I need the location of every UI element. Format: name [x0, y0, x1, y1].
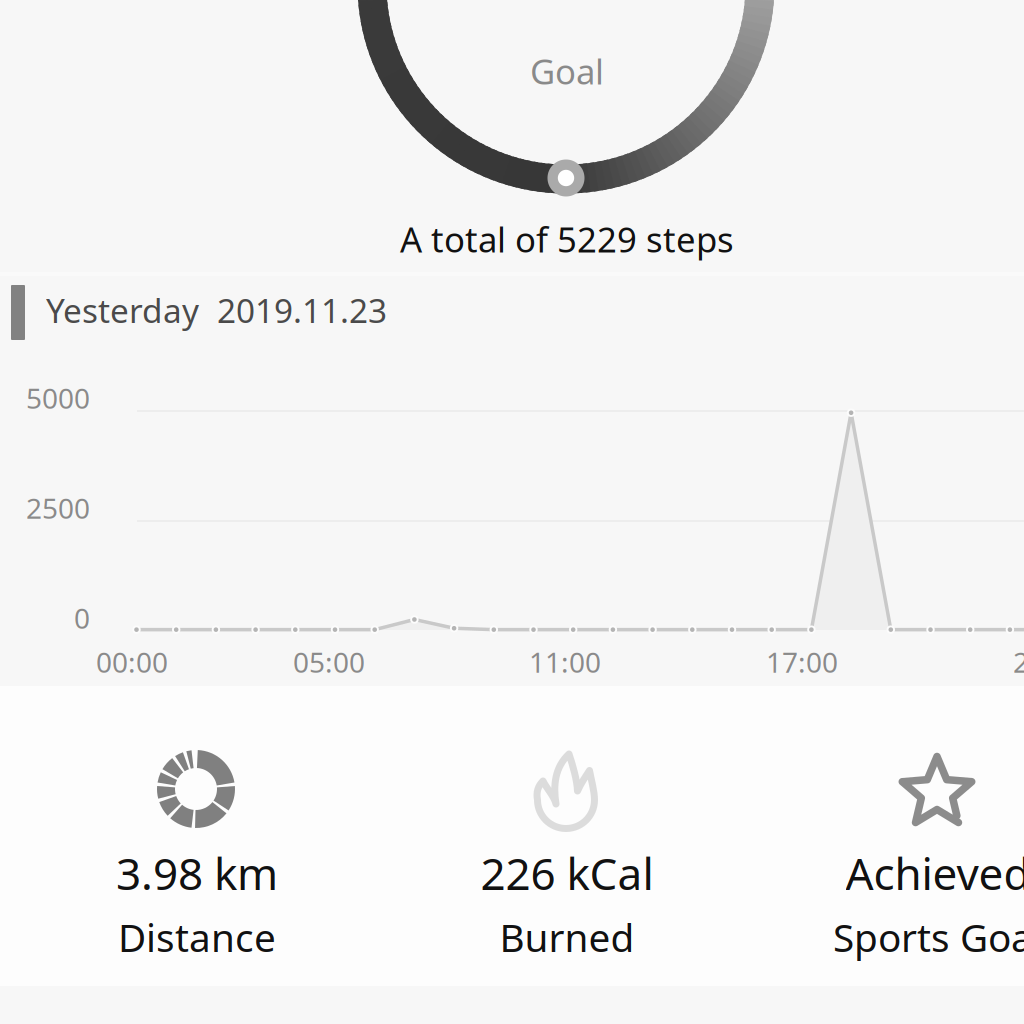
- button[interactable]: Goal: [0, 0, 1024, 272]
- staticText: 0: [74, 599, 90, 637]
- staticText: Goal: [530, 48, 604, 94]
- staticText: 17:00: [766, 643, 838, 681]
- staticText: Sports Goal: [833, 911, 1024, 963]
- staticText: A total of 5229 steps: [400, 216, 734, 262]
- staticText: 05:00: [293, 643, 365, 681]
- staticText: 11:00: [529, 643, 601, 681]
- staticText: 2500: [26, 489, 90, 527]
- button[interactable]: Yesterday 2019.11.23: [0, 276, 1024, 366]
- staticText: 00:00: [96, 643, 168, 681]
- staticText: 5000: [26, 379, 90, 417]
- staticText: 3.98 km: [116, 844, 278, 902]
- staticText: Yesterday 2019.11.23: [46, 288, 387, 332]
- staticText: 2: [1013, 643, 1024, 681]
- staticText: Burned: [499, 911, 634, 963]
- staticText: Achieved: [845, 844, 1024, 902]
- button[interactable]: Achieved: [778, 686, 1024, 986]
- button[interactable]: 3.98 km: [37, 686, 357, 986]
- staticText: Distance: [118, 911, 276, 963]
- button[interactable]: 226 kCal: [407, 686, 727, 986]
- staticText: 226 kCal: [480, 844, 653, 902]
